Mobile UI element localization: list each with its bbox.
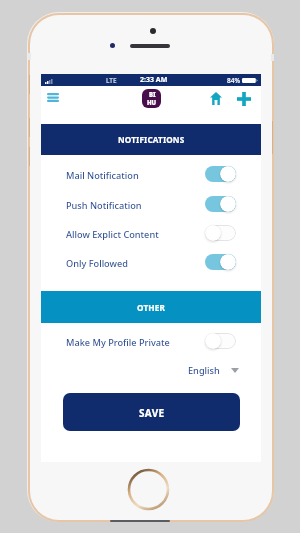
- staticText: Allow Explict Content: [66, 228, 159, 241]
- staticText: LTE: [106, 76, 117, 85]
- staticText: HU: [147, 99, 157, 107]
- button[interactable]: Menu: [43, 87, 63, 107]
- staticText: Make My Profile Private: [66, 336, 170, 349]
- button[interactable]: Only Followed: [41, 247, 261, 276]
- button[interactable]: Make My Profile Private: [41, 326, 261, 355]
- staticText: English: [188, 364, 220, 377]
- button[interactable]: Home: [206, 88, 226, 108]
- staticText: OTHER: [137, 302, 165, 313]
- staticText: 2:33 AM: [140, 75, 168, 85]
- button[interactable]: Add: [234, 89, 254, 109]
- button[interactable]: Allow Explict Content: [41, 218, 261, 247]
- staticText: NOTIFICATIONS: [118, 134, 185, 145]
- staticText: BI: [149, 91, 156, 99]
- staticText: 84%: [227, 76, 240, 85]
- button[interactable]: BIHU logo: [142, 89, 161, 108]
- staticText: Only Followed: [66, 257, 128, 270]
- button[interactable]: SAVE: [63, 393, 240, 431]
- button[interactable]: Mail Notification: [41, 159, 261, 188]
- staticText: Push Notification: [66, 199, 142, 212]
- button[interactable]: Push Notification: [41, 189, 261, 218]
- staticText: SAVE: [139, 406, 165, 420]
- button[interactable]: English: [187, 361, 240, 379]
- staticText: Mail Notification: [66, 169, 139, 182]
